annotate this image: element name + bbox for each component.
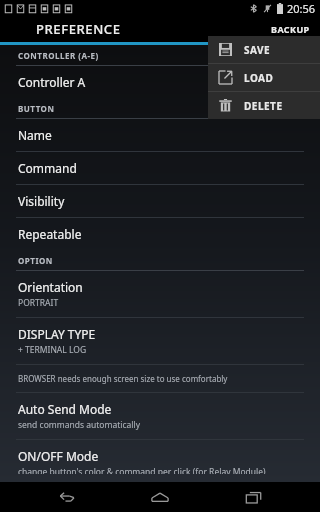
button[interactable]: Auto Send Mode xyxy=(0,393,320,439)
button[interactable]: Back xyxy=(40,482,94,512)
staticText: Controller A xyxy=(18,74,86,90)
button[interactable]: Command xyxy=(0,152,320,184)
staticText: BUTTON xyxy=(18,103,55,114)
staticText: 20:56 xyxy=(287,1,316,16)
staticText: Auto Send Mode xyxy=(18,401,112,417)
staticText: Command xyxy=(18,160,77,176)
button[interactable]: Recent apps xyxy=(227,482,281,512)
staticText: DELETE xyxy=(244,99,283,113)
staticText: BROWSER needs enough screen size to use … xyxy=(18,373,228,384)
staticText: + TERMINAL LOG xyxy=(18,344,87,356)
staticText: send commands automatically xyxy=(18,419,140,431)
button[interactable]: DISPLAY TYPE xyxy=(0,318,320,364)
button[interactable]: Name xyxy=(0,119,320,151)
button[interactable]: DELETE xyxy=(208,92,320,119)
staticText: CONTROLLER (A-E) xyxy=(18,50,99,61)
button[interactable]: Orientation xyxy=(0,271,320,317)
staticText: ON/OFF Mode xyxy=(18,448,99,464)
staticText: Orientation xyxy=(18,279,83,295)
staticText: BACKUP xyxy=(271,23,310,35)
button[interactable]: BROWSER needs enough screen size to use … xyxy=(0,365,320,392)
staticText: Visibility xyxy=(18,193,65,209)
staticText: Repeatable xyxy=(18,226,82,242)
button[interactable]: Controller A xyxy=(0,66,320,98)
staticText: change button's color & command per clic… xyxy=(18,466,266,474)
button[interactable]: Repeatable xyxy=(0,218,320,250)
button[interactable]: Visibility xyxy=(0,185,320,217)
button[interactable]: LOAD xyxy=(208,64,320,91)
staticText: OPTION xyxy=(18,255,53,266)
button[interactable]: SAVE xyxy=(208,36,320,63)
button[interactable]: ON/OFF Mode xyxy=(0,440,320,482)
staticText: DISPLAY TYPE xyxy=(18,326,96,342)
staticText: PORTRAIT xyxy=(18,297,59,309)
button[interactable]: Home xyxy=(133,482,187,512)
staticText: LOAD xyxy=(244,71,274,85)
staticText: Name xyxy=(18,127,52,143)
staticText: SAVE xyxy=(244,43,271,57)
staticText: PREFERENCE xyxy=(36,20,121,38)
button[interactable]: BACKUP xyxy=(261,17,320,41)
